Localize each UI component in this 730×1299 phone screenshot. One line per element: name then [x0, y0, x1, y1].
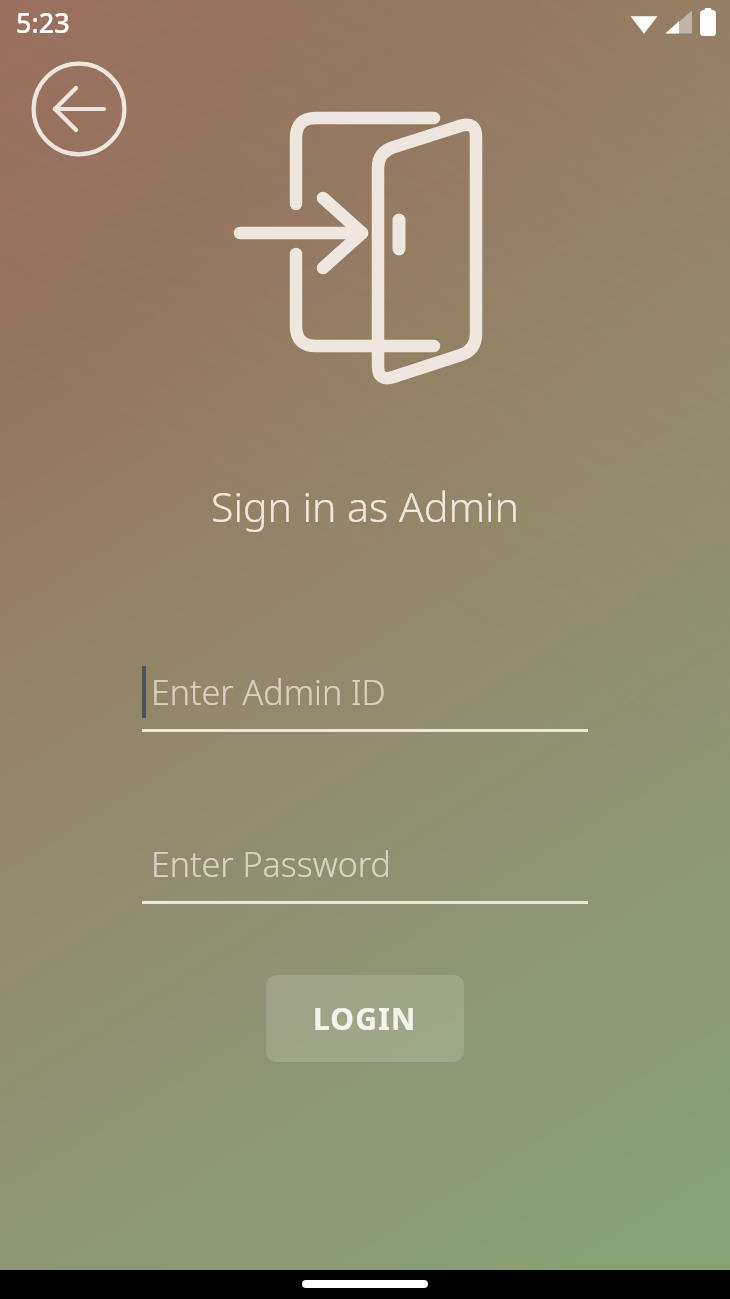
staticText: Enter Admin ID [151, 669, 386, 715]
staticText: Enter Password [151, 841, 391, 887]
button[interactable]: LOGIN [266, 975, 464, 1062]
button[interactable]: Enter Admin ID [142, 660, 588, 732]
staticText: LOGIN [313, 998, 417, 1039]
staticText: Sign in as Admin [0, 478, 730, 534]
staticText: 5:23 [16, 4, 70, 41]
button[interactable]: Back [31, 61, 127, 157]
button[interactable]: Enter Password [142, 832, 588, 904]
